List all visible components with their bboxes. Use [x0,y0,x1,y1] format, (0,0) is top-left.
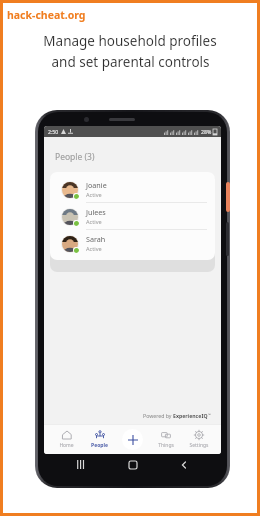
staticText: 2:50 [48,128,59,135]
staticText: People [91,442,108,449]
button[interactable]: Sarah [50,230,215,256]
staticText: Active [86,245,102,253]
staticText: Active [86,218,102,226]
staticText: Home [59,442,74,449]
staticText: Active [86,191,102,199]
button[interactable]: Recent apps [75,458,88,471]
staticText: Settings [189,442,209,449]
button[interactable]: Home [126,458,139,471]
staticText: and set parental controls [51,53,210,71]
staticText: People (3) [55,151,95,163]
button[interactable]: Julees [50,203,215,230]
staticText: ™ [208,412,211,417]
staticText: Joanie [86,180,107,190]
staticText: 28% [201,128,212,135]
staticText: Julees [86,207,106,217]
button[interactable]: Home [50,427,83,452]
staticText: ExperienceIQ [173,412,208,419]
button[interactable]: Things [149,427,182,452]
button[interactable]: Back [177,458,190,471]
staticText: Sarah [86,234,106,244]
button[interactable]: Add [122,429,143,450]
button[interactable]: People [83,427,116,452]
staticText: Things [158,442,174,449]
staticText: Manage household profiles [43,32,217,50]
button[interactable]: Joanie [50,176,215,203]
staticText: hack-cheat.org [7,8,86,22]
staticText: Powered by [143,412,173,419]
button[interactable]: Settings [182,427,215,452]
